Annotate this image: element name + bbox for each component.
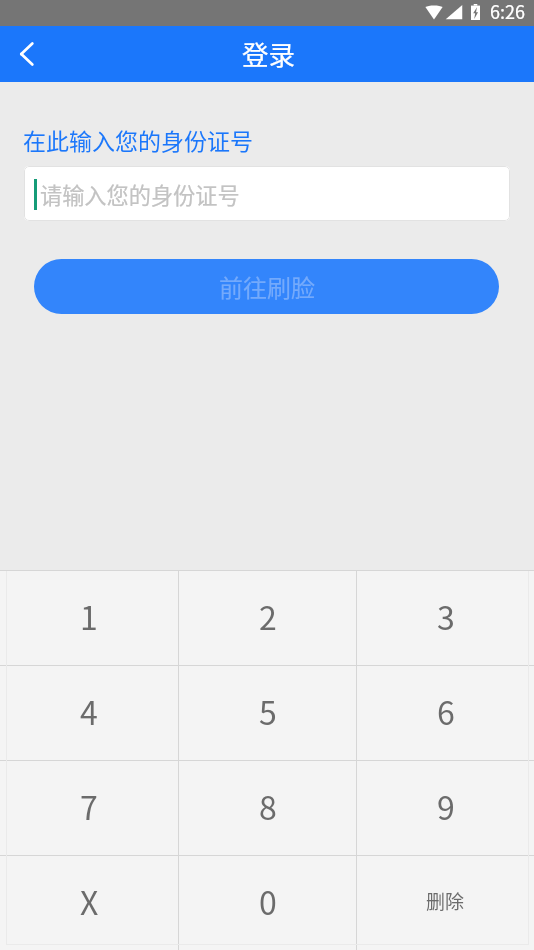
button[interactable]: 前往刷脸: [34, 259, 499, 314]
button[interactable]: 4: [0, 666, 178, 760]
button[interactable]: Back: [0, 28, 52, 80]
button[interactable]: 5: [179, 666, 356, 760]
button[interactable]: 2: [179, 571, 356, 665]
staticText: 9: [437, 783, 455, 829]
button[interactable]: 3: [357, 571, 534, 665]
staticText: 3: [437, 593, 455, 639]
staticText: 6: [437, 688, 455, 734]
button[interactable]: 9: [357, 761, 534, 855]
staticText: X: [80, 878, 99, 924]
staticText: 删除: [426, 887, 465, 915]
staticText: 1: [80, 593, 98, 639]
button[interactable]: 删除: [357, 856, 534, 950]
staticText: 7: [80, 783, 98, 829]
staticText: 2: [259, 593, 277, 639]
staticText: 5: [259, 688, 277, 734]
button[interactable]: 8: [179, 761, 356, 855]
staticText: 请输入您的身份证号: [40, 178, 240, 210]
staticText: 6:26: [490, 0, 525, 24]
staticText: 在此输入您的身份证号: [23, 123, 253, 156]
staticText: 8: [259, 783, 277, 829]
button[interactable]: 7: [0, 761, 178, 855]
staticText: 登录: [242, 34, 295, 72]
staticText: 前往刷脸: [219, 269, 315, 304]
button[interactable]: 请输入您的身份证号: [24, 166, 510, 221]
staticText: 0: [259, 878, 277, 924]
button[interactable]: 0: [179, 856, 356, 950]
button[interactable]: 1: [0, 571, 178, 665]
button[interactable]: 6: [357, 666, 534, 760]
button[interactable]: X: [0, 856, 178, 950]
staticText: 4: [80, 688, 98, 734]
